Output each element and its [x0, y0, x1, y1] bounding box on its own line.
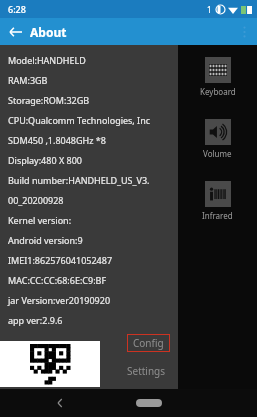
button[interactable]: Keyboard: [196, 55, 240, 99]
staticText: Kernel version:: [8, 214, 72, 226]
staticText: Config: [133, 336, 164, 350]
staticText: About: [30, 24, 67, 40]
staticText: app ver:2.9.6: [8, 314, 63, 326]
staticText: jar Version:ver20190920: [8, 294, 111, 306]
staticText: Display:480 X 800: [8, 154, 82, 166]
staticText: Build number:HANDHELD_US_V3.: [8, 174, 150, 186]
staticText: Model:HANDHELD: [8, 54, 86, 66]
staticText: Infrared: [202, 210, 233, 221]
button[interactable]: Settings: [121, 362, 172, 380]
staticText: 00_20200928: [8, 194, 64, 206]
button[interactable]: Volume: [199, 117, 236, 161]
staticText: 6:28: [8, 3, 26, 15]
staticText: CPU:Qualcomm Technologies, Inc: [8, 114, 151, 126]
button[interactable]: Back: [48, 391, 72, 415]
staticText: Keyboard: [200, 86, 236, 97]
staticText: Storage:ROM:32GB: [8, 94, 90, 106]
staticText: SDM450 ,1.8048GHz *8: [8, 134, 106, 146]
button[interactable]: Home: [132, 395, 166, 411]
staticText: Android version:9: [8, 234, 83, 246]
staticText: Volume: [203, 148, 232, 159]
button[interactable]: Infrared: [198, 179, 237, 223]
button[interactable]: Config: [127, 334, 170, 352]
staticText: RAM:3GB: [8, 74, 48, 86]
staticText: IMEI1:862576041052487: [8, 254, 113, 266]
staticText: 1: [207, 4, 212, 15]
staticText: MAC:CC:CC:68:6E:C9:BF: [8, 274, 107, 286]
button[interactable]: Back: [0, 18, 30, 45]
staticText: Settings: [127, 364, 166, 378]
